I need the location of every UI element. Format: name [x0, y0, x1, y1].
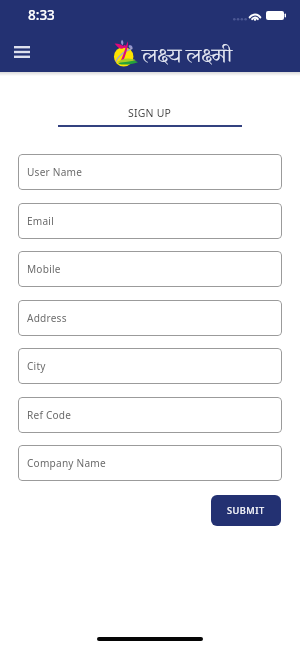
- button[interactable]: Address: [18, 300, 282, 336]
- staticText: लक्ष्य लक्ष्मी: [142, 42, 233, 71]
- button[interactable]: Company Name: [18, 445, 282, 481]
- staticText: Email: [27, 214, 55, 228]
- staticText: Address: [27, 311, 67, 325]
- staticText: City: [27, 359, 46, 373]
- button[interactable]: Ref Code: [18, 397, 282, 433]
- button[interactable]: SUBMIT: [211, 495, 281, 526]
- staticText: Ref Code: [27, 408, 72, 422]
- button[interactable]: Email: [18, 203, 282, 239]
- staticText: SUBMIT: [227, 504, 265, 517]
- staticText: 8:33: [28, 6, 55, 24]
- button[interactable]: City: [18, 348, 282, 384]
- staticText: Company Name: [27, 456, 106, 470]
- staticText: User Name: [27, 165, 83, 179]
- staticText: SIGN UP: [128, 106, 172, 120]
- staticText: Mobile: [27, 262, 61, 276]
- button[interactable]: Open navigation menu: [6, 36, 38, 68]
- button[interactable]: User Name: [18, 154, 282, 190]
- button[interactable]: Mobile: [18, 251, 282, 287]
- button[interactable]: SIGN UP: [58, 98, 242, 127]
